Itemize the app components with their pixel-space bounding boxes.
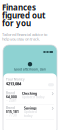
staticText: for you: [2, 18, 31, 29]
staticText: $213,084: [6, 81, 21, 86]
staticText: ·· 2481: [6, 99, 17, 103]
staticText: Checking: [22, 91, 37, 96]
staticText: $15,181: [6, 109, 19, 114]
staticText: Your Money: [6, 77, 24, 81]
staticText: Brand: [6, 106, 15, 110]
button[interactable]: Brand: [3, 90, 57, 104]
staticText: Good afternoon, Dan: [14, 67, 46, 71]
staticText: $4,000: [6, 95, 17, 99]
button[interactable]: Brand: [3, 104, 57, 119]
staticText: Updated today: [22, 95, 44, 99]
staticText: ·· 7730: [6, 113, 17, 117]
button[interactable]: More options: [48, 83, 54, 86]
staticText: help you stay on track.: [2, 36, 40, 41]
staticText: Updated today: [24, 110, 37, 118]
staticText: Brand: [6, 91, 15, 95]
staticText: figured out: [2, 10, 45, 21]
staticText: Finances: [2, 2, 36, 13]
staticText: Savings: [24, 106, 37, 110]
staticText: Tailored financial advice to: [2, 32, 47, 37]
